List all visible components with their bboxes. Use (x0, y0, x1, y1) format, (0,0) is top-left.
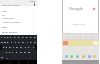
button[interactable]: ?1 (0, 55, 5, 60)
button[interactable]: m (27, 50, 31, 55)
button[interactable]: 3 (6, 35, 9, 40)
button[interactable]: Emoji (70, 55, 73, 58)
button[interactable]: 7 (21, 35, 25, 40)
button[interactable]: , (5, 55, 9, 60)
button[interactable]: Date (0, 23, 37, 30)
button[interactable]: Nationality (0, 16, 37, 23)
button[interactable]: 9 (29, 35, 33, 40)
staticText: search here (73, 23, 86, 26)
staticText: 3 (7, 36, 9, 39)
staticText: u (22, 41, 24, 44)
button[interactable]: x (8, 50, 11, 55)
button[interactable]: v (15, 50, 19, 55)
button[interactable]: More options (33, 3, 36, 6)
button[interactable]: Emoji (76, 55, 79, 58)
staticText: q (1, 41, 3, 44)
staticText: h (20, 46, 22, 49)
button[interactable]: u (21, 40, 25, 45)
button[interactable]: Account (91, 6, 97, 12)
button[interactable]: j (23, 45, 27, 50)
staticText: t (15, 41, 16, 44)
button[interactable] (63, 41, 68, 45)
button[interactable]: c (11, 50, 15, 55)
button[interactable]: o (29, 40, 33, 45)
button[interactable]: b (19, 50, 23, 55)
button[interactable]: s (5, 45, 8, 50)
staticText: 2 (4, 36, 6, 39)
button[interactable]: Booking details (0, 2, 37, 6)
button[interactable]: Email address (0, 30, 37, 35)
button[interactable]: i (25, 40, 29, 45)
button[interactable]: e (6, 40, 9, 45)
button[interactable]: g (15, 45, 19, 50)
staticText: b (20, 51, 22, 54)
button[interactable]: d (8, 45, 11, 50)
staticText: c (12, 51, 14, 54)
button[interactable]: 0 (33, 35, 37, 40)
button[interactable]: f (11, 45, 15, 50)
button[interactable]: Emoji (88, 55, 91, 58)
button[interactable]: t (13, 40, 17, 45)
button[interactable]: r (9, 40, 13, 45)
button[interactable]: y (17, 40, 21, 45)
button[interactable]: Title (0, 9, 37, 16)
staticText: Mr (2, 13, 6, 16)
button[interactable]: p (33, 40, 37, 45)
staticText: i (27, 41, 28, 44)
button[interactable]: n (23, 50, 27, 55)
button[interactable]: w (3, 40, 6, 45)
staticText: Title (2, 9, 7, 12)
button[interactable]: Emoji (82, 55, 85, 58)
button[interactable]: 6 (17, 35, 21, 40)
staticText: 6 (18, 36, 20, 39)
button[interactable]: q (0, 40, 3, 45)
button[interactable]: . (28, 55, 32, 60)
staticText: Date (2, 25, 8, 28)
button[interactable]: 2 (3, 35, 6, 40)
button[interactable]: z (5, 50, 8, 55)
staticText: f (13, 46, 14, 49)
button[interactable]: 1 (0, 35, 3, 40)
button[interactable]: 5 (13, 35, 17, 40)
button[interactable]: Emoji (65, 55, 68, 58)
button[interactable]: a (2, 45, 5, 50)
button[interactable]: 8 (25, 35, 29, 40)
button[interactable]: Emoji (93, 55, 96, 58)
staticText: v (16, 51, 18, 54)
staticText: 8 (26, 36, 28, 39)
staticText: 1 (1, 36, 3, 39)
staticText: Booking details (2, 3, 20, 6)
button[interactable]: h (19, 45, 23, 50)
staticText: g (16, 46, 18, 49)
button[interactable]: l (31, 45, 35, 50)
staticText: s (6, 46, 8, 49)
staticText: k (28, 46, 30, 49)
button[interactable]: k (27, 45, 31, 50)
button[interactable]: 4 (9, 35, 13, 40)
staticText: j (25, 46, 26, 49)
